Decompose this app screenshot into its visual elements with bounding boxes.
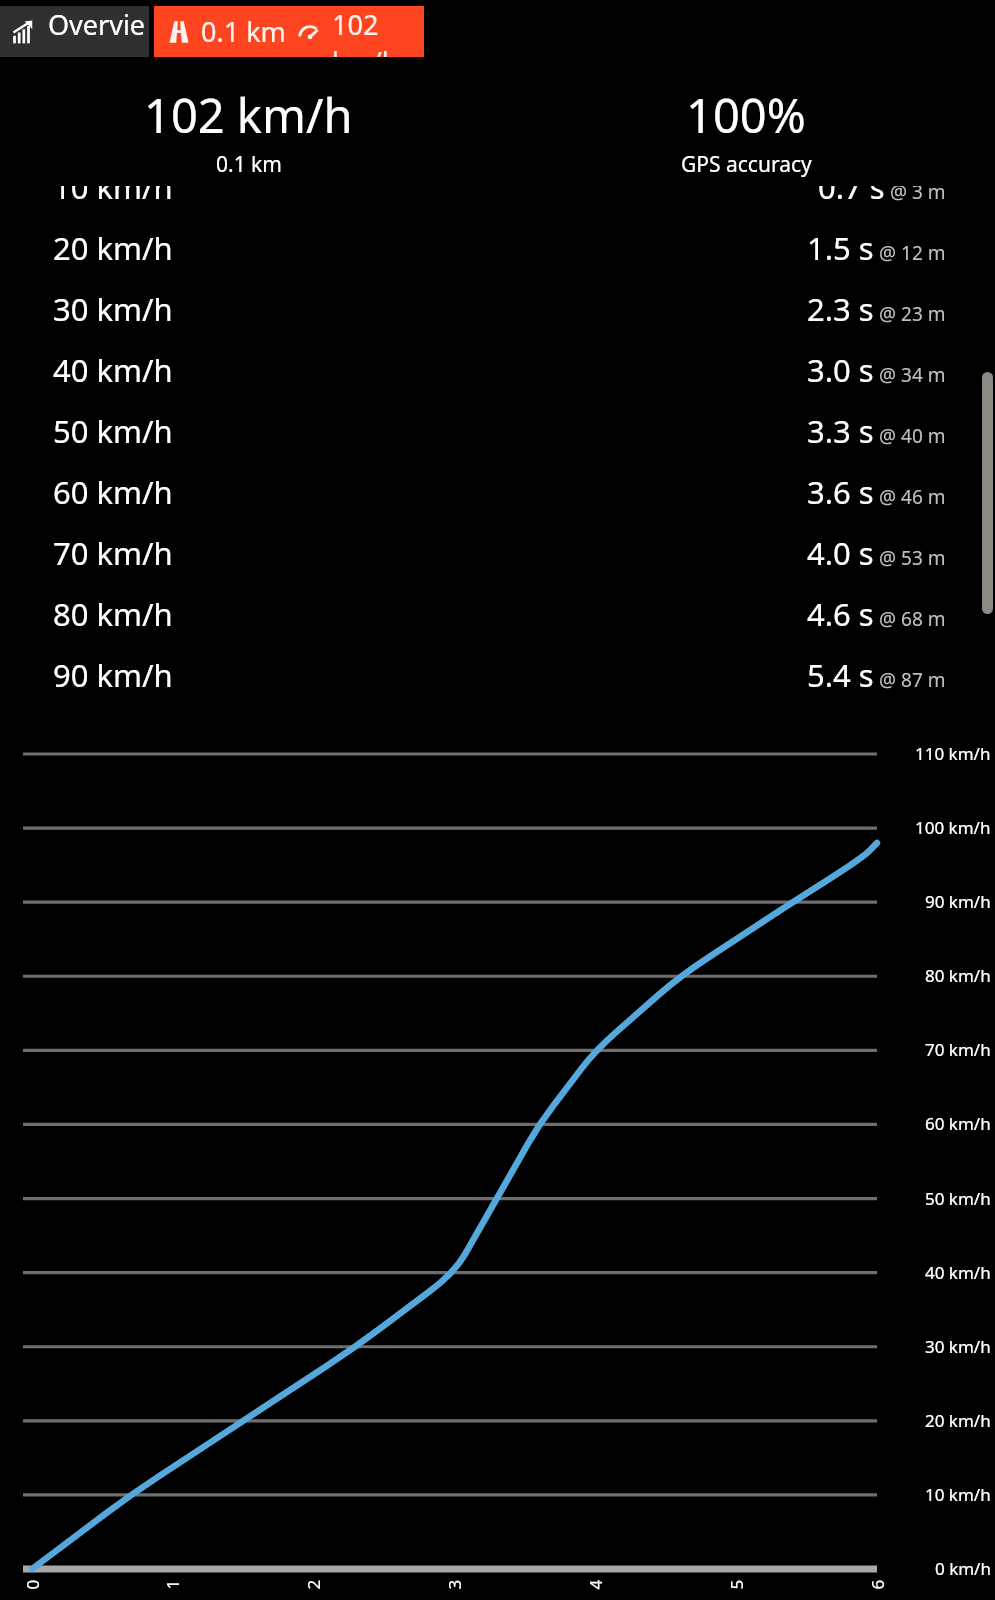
staticText: @ 3 m [890, 186, 946, 205]
staticText: 1 [160, 1579, 183, 1589]
button[interactable]: 20 km/h [0, 217, 995, 278]
staticText: 40 km/h [53, 349, 173, 391]
staticText: 102 km/h [332, 6, 424, 57]
staticText: 3 [442, 1579, 465, 1589]
staticText: 70 km/h [925, 1038, 991, 1061]
staticText: 0.1 km [216, 150, 282, 179]
staticText: 110 km/h [915, 742, 991, 765]
staticText: 4.6 s [807, 593, 874, 635]
staticText: 80 km/h [925, 964, 991, 987]
staticText: @ 68 m [879, 606, 946, 632]
staticText: @ 12 m [879, 240, 946, 266]
staticText: 90 km/h [925, 890, 991, 913]
staticText: 50 km/h [53, 410, 173, 452]
staticText: 5.4 s [807, 654, 874, 696]
button[interactable]: 30 km/h [0, 278, 995, 339]
staticText: 102 km/h [144, 83, 353, 147]
button[interactable]: 50 km/h [0, 400, 995, 461]
button[interactable]: 10 km/h [0, 186, 995, 217]
staticText: 5 [724, 1579, 747, 1589]
staticText: 0 [20, 1579, 43, 1589]
button[interactable]: 60 km/h [0, 461, 995, 522]
staticText: 0 km/h [935, 1557, 991, 1580]
staticText: 70 km/h [53, 532, 173, 574]
staticText: 4 [583, 1579, 606, 1589]
staticText: 10 km/h [925, 1483, 991, 1506]
button[interactable]: 40 km/h [0, 339, 995, 400]
staticText: 3.0 s [807, 349, 874, 391]
staticText: 90 km/h [53, 654, 173, 696]
staticText: 50 km/h [925, 1187, 991, 1210]
button[interactable]: 70 km/h [0, 522, 995, 583]
staticText: @ 40 m [879, 423, 946, 449]
staticText: 1.5 s [807, 227, 874, 269]
staticText: @ 53 m [879, 545, 946, 571]
staticText: @ 34 m [879, 362, 946, 388]
staticText: @ 23 m [879, 301, 946, 327]
staticText: 100 km/h [915, 816, 991, 839]
staticText: 4.0 s [807, 532, 874, 574]
staticText: 2.3 s [807, 288, 874, 330]
staticText: 3.6 s [807, 471, 874, 513]
staticText: 80 km/h [53, 593, 173, 635]
staticText: 20 km/h [925, 1409, 991, 1432]
staticText: 30 km/h [53, 288, 173, 330]
button[interactable]: 80 km/h [0, 583, 995, 644]
staticText: 60 km/h [925, 1112, 991, 1135]
staticText: 100% [686, 83, 806, 147]
staticText: GPS accuracy [681, 150, 812, 179]
staticText: @ 46 m [879, 484, 946, 510]
button[interactable]: Overview [0, 6, 149, 57]
staticText: 0.1 km [201, 13, 286, 50]
staticText: @ 87 m [879, 667, 946, 693]
staticText: 3.3 s [807, 410, 874, 452]
staticText: 2 [301, 1579, 324, 1589]
button[interactable]: 0.1 km [154, 6, 424, 57]
staticText: 0.7 s [818, 186, 885, 208]
staticText: 30 km/h [925, 1335, 991, 1358]
staticText: 6 [865, 1579, 888, 1589]
staticText: Overview [48, 6, 149, 57]
button[interactable]: 90 km/h [0, 644, 995, 705]
staticText: 60 km/h [53, 471, 173, 513]
staticText: 40 km/h [925, 1261, 991, 1284]
staticText: 20 km/h [53, 227, 173, 269]
staticText: 10 km/h [53, 186, 173, 208]
